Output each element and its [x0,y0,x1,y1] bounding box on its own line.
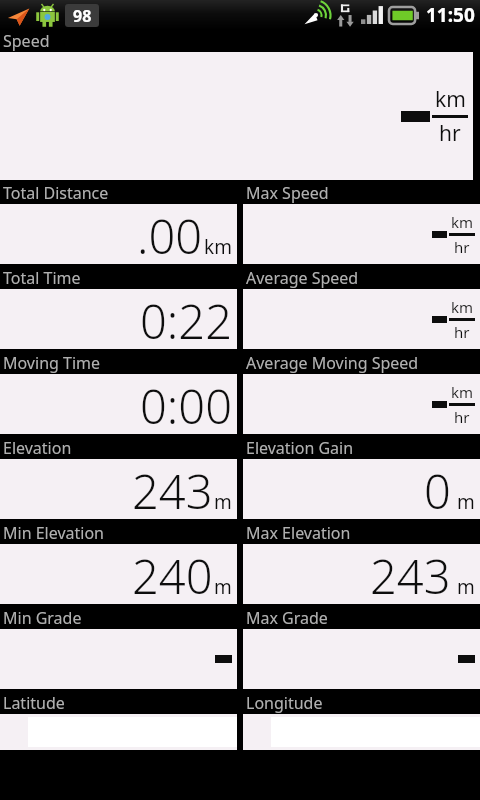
button[interactable]: Longitude [243,692,480,750]
staticText: Max Elevation [246,522,351,544]
staticText: Min Elevation [3,522,104,544]
staticText: m [452,574,475,600]
staticText: Max Grade [246,607,328,629]
button[interactable]: Average Moving Speed [243,352,480,434]
staticText: Elevation Gain [246,437,354,459]
staticText: 243 [132,459,213,519]
staticText: m [214,574,232,600]
staticText: m [452,489,475,515]
staticText: km [451,297,474,317]
button[interactable]: Min Grade [0,607,237,689]
button[interactable]: Elevation Gain [243,437,480,519]
staticText: hr [454,322,470,342]
staticText: Longitude [246,692,323,714]
button[interactable]: Average Speed [243,267,480,349]
staticText: Speed [3,30,50,52]
staticText: Latitude [3,692,65,714]
button[interactable]: Total Distance [0,182,237,264]
staticText: Moving Time [3,352,101,374]
staticText: 98 [73,5,92,27]
other: Navigation active [7,6,30,26]
staticText: 0:00 [140,374,232,434]
staticText: Total Distance [3,182,109,204]
staticText: m [214,489,232,515]
button[interactable]: Moving Time [0,352,237,434]
button[interactable]: Elevation [0,437,237,519]
staticText: .00 [137,204,203,264]
staticText: hr [439,119,461,148]
button[interactable]: Latitude [0,692,237,750]
other: Android app [36,4,59,27]
staticText: Average Moving Speed [246,352,419,374]
staticText: Elevation [3,437,72,459]
button[interactable]: Max Elevation [243,522,480,604]
button[interactable]: Max Grade [243,607,480,689]
staticText: km [204,234,232,260]
button[interactable]: Min Elevation [0,522,237,604]
other: GPS [304,4,329,26]
staticText: Min Grade [3,607,82,629]
button[interactable]: Total Time [0,267,237,349]
staticText: Max Speed [246,182,329,204]
button[interactable]: Speed [0,30,480,180]
staticText: 11:50 [426,2,475,28]
staticText: km [451,382,474,402]
staticText: Average Speed [246,267,359,289]
other: GPRS data [336,4,355,27]
other: Signal strength [361,6,383,24]
staticText: 0:22 [140,289,232,349]
staticText: hr [454,237,470,257]
staticText: Total Time [3,267,81,289]
staticText: km [435,85,466,114]
staticText: 0 [424,459,451,519]
staticText: hr [454,407,470,427]
staticText: 240 [132,544,213,604]
staticText: 243 [370,544,451,604]
other: Battery [389,7,419,24]
button[interactable]: Max Speed [243,182,480,264]
staticText: km [451,212,474,232]
